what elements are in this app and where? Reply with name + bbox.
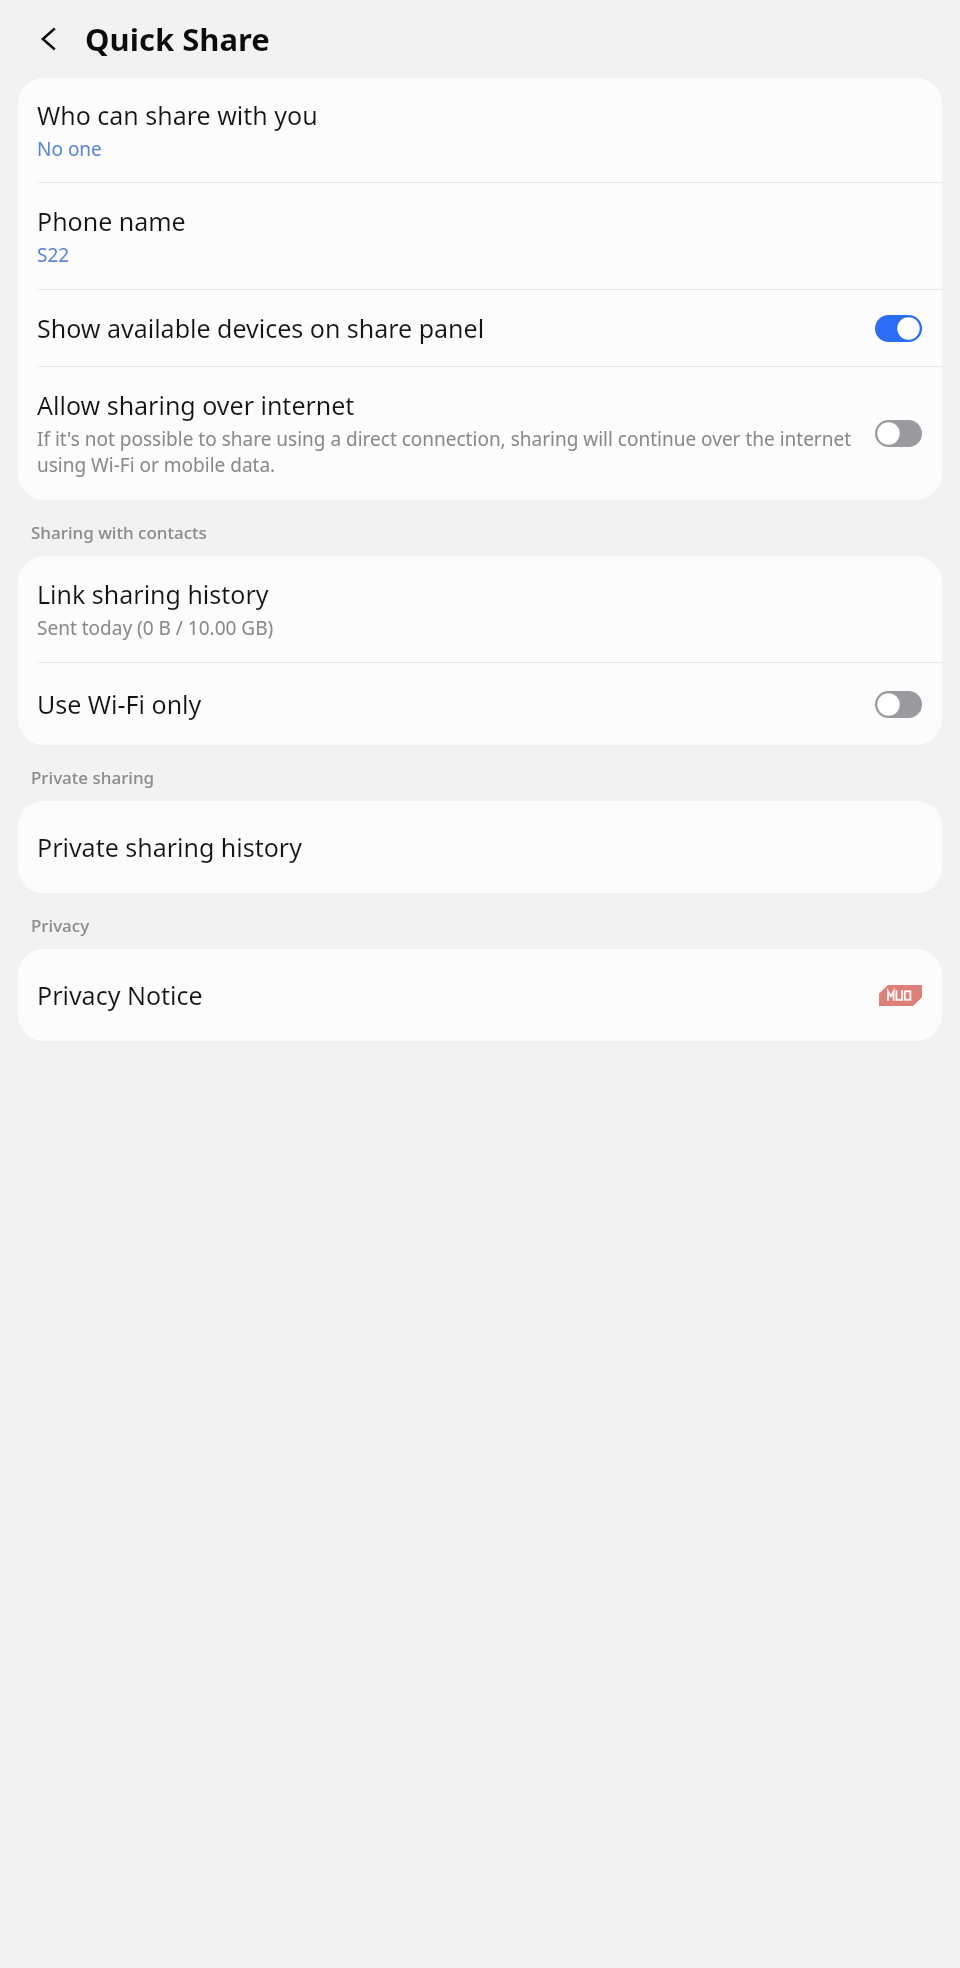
staticText: Sent today (0 B / 10.00 GB) <box>37 615 274 641</box>
staticText: S22 <box>37 242 70 268</box>
button[interactable]: Phone name <box>18 183 942 289</box>
staticText: Privacy Notice <box>37 978 879 1012</box>
button[interactable]: Privacy Notice <box>18 949 942 1041</box>
staticText: Quick Share <box>85 18 270 60</box>
staticText: Who can share with you <box>37 98 318 132</box>
button[interactable]: Use Wi-Fi only <box>18 663 942 745</box>
button[interactable]: Show available devices on share panel <box>18 290 942 366</box>
staticText: Show available devices on share panel <box>37 311 485 345</box>
staticText: Link sharing history <box>37 577 269 611</box>
button[interactable]: Allow sharing over internet <box>18 367 942 500</box>
staticText: Allow sharing over internet <box>37 388 355 422</box>
button[interactable]: Link sharing history <box>18 556 942 662</box>
button[interactable]: Who can share with you <box>18 78 942 182</box>
staticText: Sharing with contacts <box>31 521 207 544</box>
staticText: If it's not possible to share using a di… <box>37 426 865 478</box>
button[interactable]: Back <box>26 16 72 62</box>
staticText: Privacy <box>31 914 90 937</box>
staticText: Use Wi-Fi only <box>37 687 202 721</box>
staticText: Private sharing <box>31 766 155 789</box>
staticText: Phone name <box>37 204 186 238</box>
button[interactable]: Private sharing history <box>18 801 942 893</box>
staticText: Private sharing history <box>37 830 302 864</box>
staticText: No one <box>37 136 102 162</box>
